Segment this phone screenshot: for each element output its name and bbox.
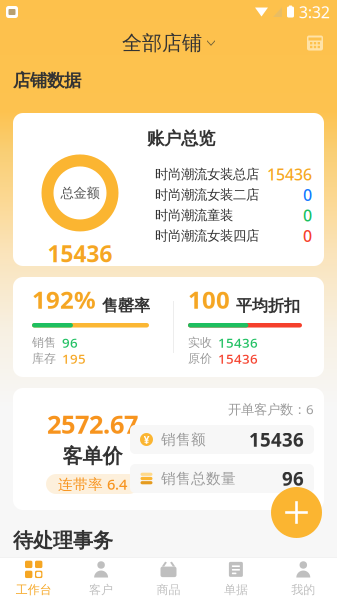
staticText: 原价 [188, 351, 212, 366]
staticText: 店铺数据 [13, 70, 81, 91]
button[interactable]: Add [271, 487, 322, 538]
staticText: 实收 [188, 335, 212, 350]
button[interactable]: 单据 [202, 557, 270, 600]
staticText: 客单价 [62, 444, 122, 468]
staticText: 0 [303, 205, 312, 226]
staticText: 时尚潮流女装四店 [155, 228, 259, 244]
staticText: 100 [188, 284, 230, 315]
staticText: 工作台 [16, 582, 52, 597]
staticText: 15436 [267, 164, 312, 185]
staticText: 待处理事务 [13, 528, 113, 553]
staticText: 开单客户数：6 [228, 400, 314, 418]
button[interactable]: 商品 [135, 557, 202, 600]
staticText: 销售总数量 [161, 469, 236, 487]
button[interactable]: Calendar [306, 34, 324, 52]
staticText: 0 [303, 225, 312, 246]
staticText: 售罄率 [102, 296, 150, 315]
staticText: 3:32 [299, 1, 330, 23]
staticText: 账户总览 [147, 128, 215, 149]
staticText: 销售额 [161, 430, 206, 448]
staticText: 时尚潮流女装二店 [155, 187, 259, 203]
staticText: 时尚潮流童装 [155, 207, 233, 223]
staticText: 2572.67 [47, 407, 138, 441]
staticText: 库存 [32, 351, 56, 366]
staticText: 15436 [249, 427, 304, 452]
staticText: 0 [303, 184, 312, 205]
staticText: 商品 [156, 582, 180, 597]
staticText: 连带率 6.4 [58, 474, 127, 494]
staticText: 15436 [218, 350, 258, 367]
staticText: 销售 [32, 335, 56, 350]
button[interactable]: 客户 [67, 557, 135, 600]
staticText: 15436 [47, 238, 112, 268]
staticText: 平均折扣 [236, 296, 300, 315]
staticText: 195 [62, 350, 86, 367]
button[interactable]: 我的 [270, 557, 337, 600]
staticText: 客户 [89, 582, 113, 597]
staticText: 96 [282, 466, 304, 491]
staticText: 时尚潮流女装总店 [155, 166, 259, 182]
button[interactable]: 全部店铺 [122, 31, 215, 55]
staticText: ¥ [143, 432, 149, 447]
staticText: 总金额 [60, 185, 99, 201]
button[interactable]: 工作台 [0, 557, 67, 600]
staticText: 全部店铺 [122, 31, 202, 55]
staticText: 单据 [224, 582, 248, 597]
staticText: 15436 [218, 334, 258, 351]
staticText: 96 [62, 334, 78, 351]
staticText: 我的 [291, 582, 315, 597]
staticText: 192% [32, 284, 96, 315]
